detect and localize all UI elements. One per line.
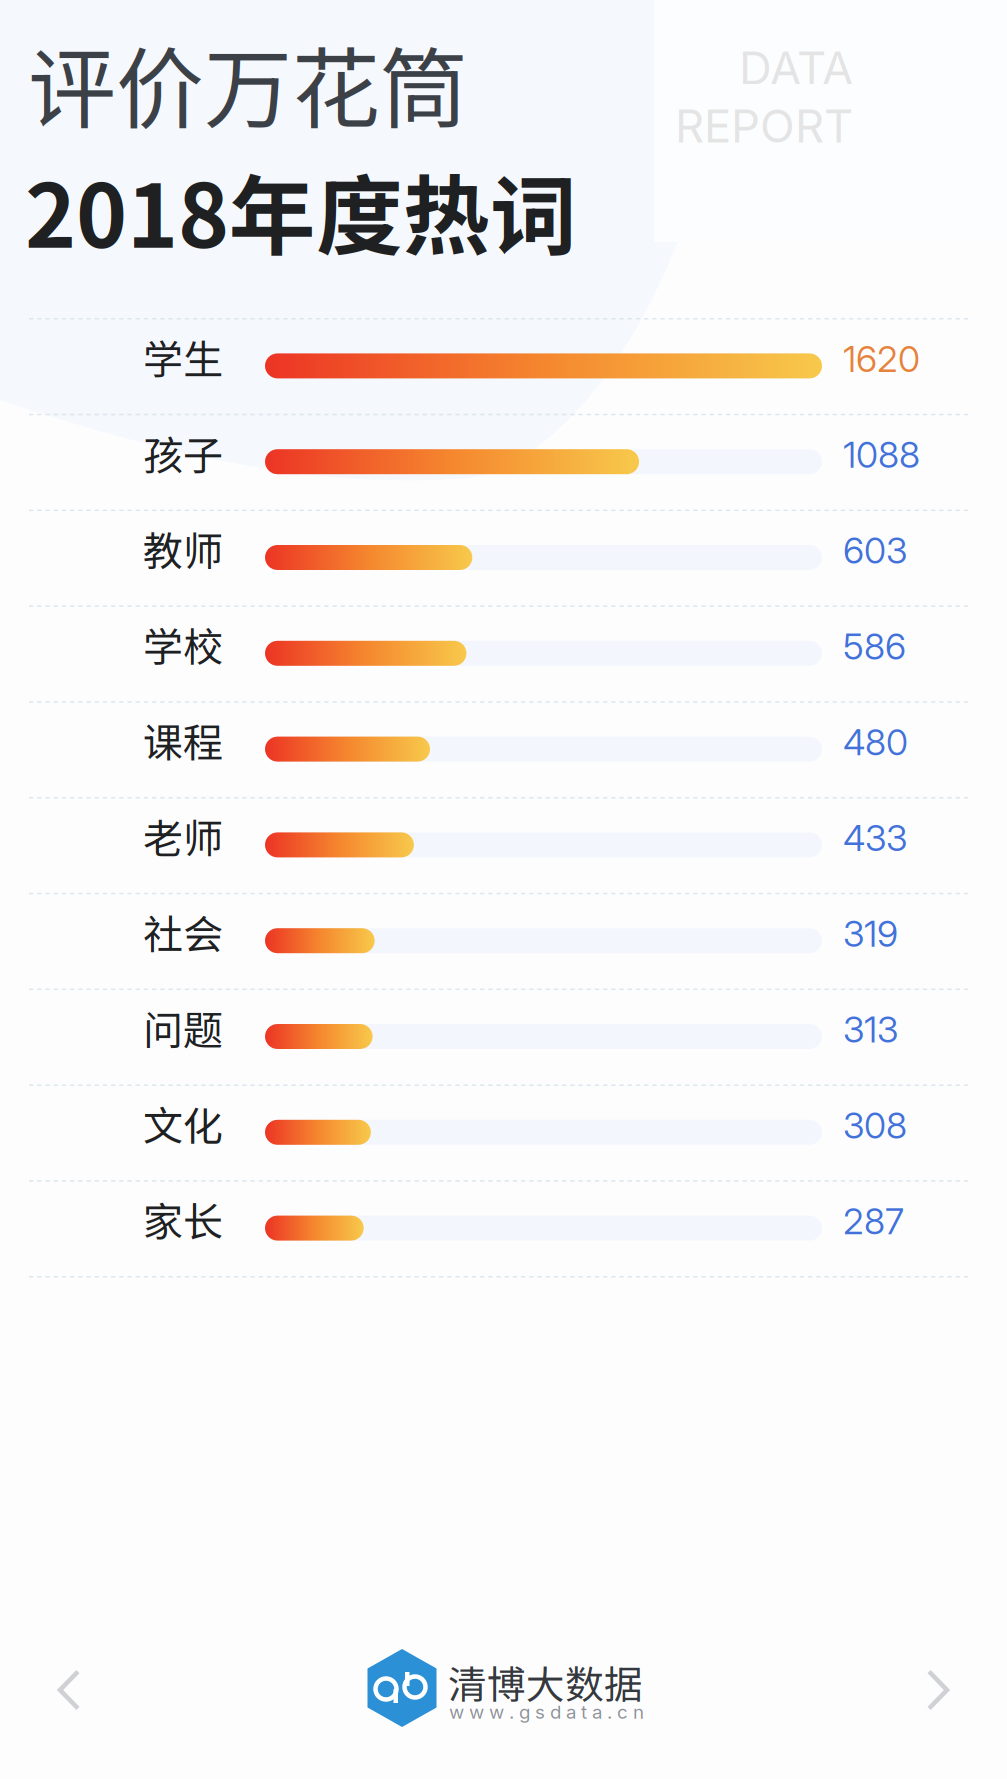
staticText: 433: [843, 816, 907, 860]
staticText: 孩子: [143, 424, 223, 482]
staticText: 评价万花筒: [28, 19, 468, 147]
staticText: 清博大数据: [448, 1654, 643, 1710]
staticText: REPORT: [675, 99, 853, 153]
staticText: 家长: [143, 1190, 223, 1248]
staticText: 学生: [143, 328, 223, 386]
staticText: 586: [843, 624, 906, 668]
staticText: 308: [843, 1103, 907, 1147]
staticText: 文化: [143, 1094, 223, 1152]
staticText: 480: [843, 720, 908, 764]
staticText: DATA: [739, 41, 853, 95]
staticText: 社会: [143, 903, 223, 961]
staticText: 603: [843, 529, 907, 572]
staticText: 287: [843, 1199, 904, 1243]
staticText: 2018年度热词: [25, 147, 577, 273]
button[interactable]: Next: [916, 1664, 958, 1718]
staticText: 课程: [143, 711, 223, 769]
staticText: 1620: [843, 337, 920, 381]
staticText: 问题: [143, 998, 223, 1056]
button[interactable]: Previous: [49, 1664, 91, 1718]
staticText: 1088: [843, 433, 920, 476]
staticText: 老师: [143, 807, 223, 865]
staticText: 学校: [143, 615, 223, 673]
staticText: 教师: [143, 519, 223, 577]
staticText: 313: [843, 1008, 898, 1051]
staticText: w w w . g s d a t a . c n: [449, 1701, 644, 1723]
staticText: 319: [843, 912, 898, 955]
